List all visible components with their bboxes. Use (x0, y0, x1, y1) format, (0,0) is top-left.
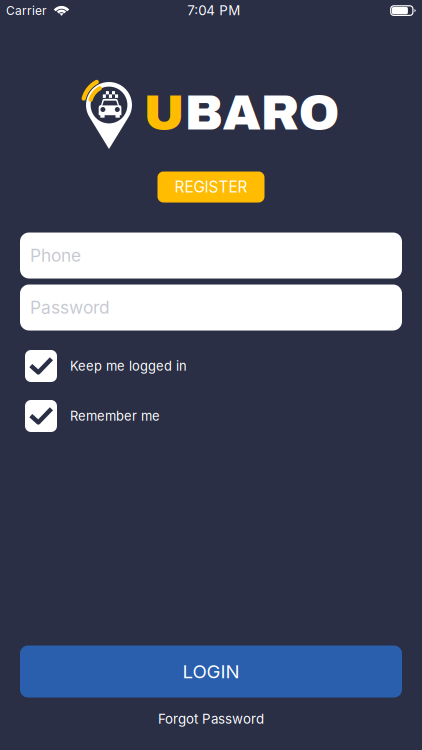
staticText: U (143, 86, 184, 140)
staticText: LOGIN (182, 660, 239, 683)
button[interactable]: LOGIN (20, 645, 402, 697)
button[interactable]: Remember me (25, 400, 265, 432)
staticText: REGISTER (174, 178, 247, 196)
staticText: BARO (184, 86, 339, 140)
staticText: Remember me (70, 408, 160, 424)
staticText: Forgot Password (158, 711, 264, 727)
staticText: Carrier (6, 3, 47, 18)
button[interactable]: Keep me logged in (25, 350, 265, 382)
staticText: Password (30, 297, 110, 318)
staticText: Phone (30, 245, 81, 266)
button[interactable]: Forgot Password (146, 710, 276, 728)
staticText: 7:04 PM (187, 2, 240, 18)
staticText: Keep me logged in (70, 358, 187, 374)
button[interactable]: REGISTER (157, 171, 264, 202)
